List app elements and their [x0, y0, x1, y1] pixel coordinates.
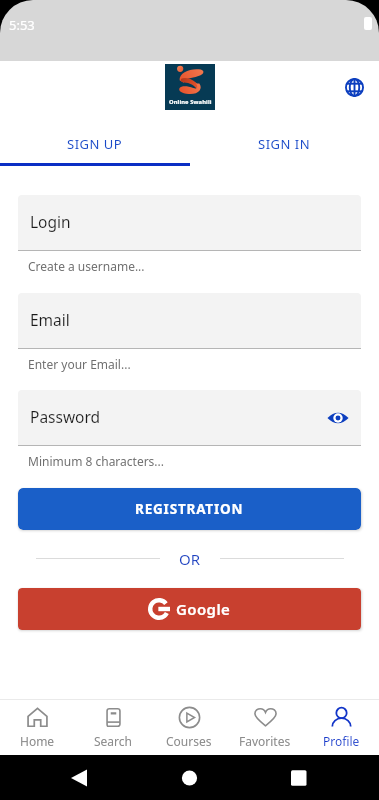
staticText: SIGN IN: [258, 135, 311, 153]
staticText: OR: [179, 549, 201, 569]
button[interactable]: Password: [18, 390, 361, 445]
button[interactable]: Login: [18, 195, 361, 250]
button[interactable]: Profile: [303, 700, 379, 755]
staticText: Favorites: [239, 733, 291, 749]
staticText: Email: [30, 309, 70, 330]
button[interactable]: Courses: [151, 700, 227, 755]
staticText: Online Swahili: [169, 98, 212, 106]
staticText: Password: [30, 406, 101, 427]
button[interactable]: Email: [18, 293, 361, 348]
staticText: REGISTRATION: [135, 500, 244, 518]
staticText: Enter your Email...: [28, 356, 131, 372]
button[interactable]: Language: [337, 70, 371, 104]
staticText: Search: [94, 733, 132, 749]
button[interactable]: REGISTRATION: [18, 488, 361, 530]
button[interactable]: Show password: [324, 404, 352, 432]
staticText: Google: [176, 599, 231, 619]
button[interactable]: SIGN IN: [189, 122, 379, 167]
staticText: 5:53: [9, 16, 35, 34]
button[interactable]: Home: [0, 700, 75, 755]
staticText: Courses: [166, 733, 212, 749]
staticText: Login: [30, 211, 71, 232]
staticText: Create a username...: [28, 258, 145, 274]
button[interactable]: SIGN UP: [0, 122, 189, 167]
staticText: Home: [20, 733, 55, 749]
button[interactable]: Search: [75, 700, 151, 755]
staticText: Minimum 8 characters...: [28, 453, 165, 469]
button[interactable]: Google: [18, 588, 361, 630]
staticText: SIGN UP: [67, 135, 123, 153]
staticText: Profile: [323, 733, 360, 749]
button[interactable]: Favorites: [227, 700, 303, 755]
